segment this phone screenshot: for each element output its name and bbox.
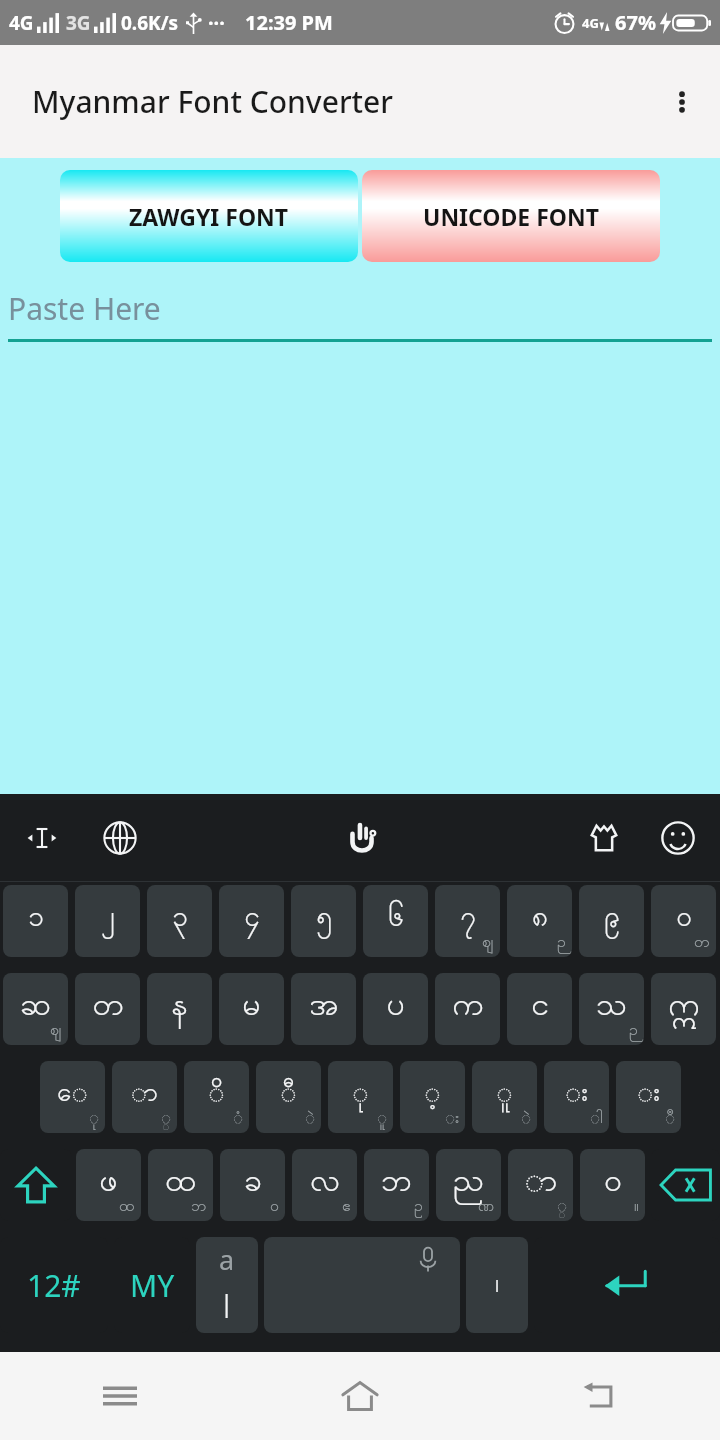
button[interactable]: း [544,1061,609,1133]
staticText: ဆ [20,983,51,1030]
button[interactable]: MY [114,1237,190,1333]
button[interactable]: အ [291,973,356,1045]
staticText: း [445,1107,459,1131]
button[interactable]: Home [240,1352,480,1440]
button[interactable]: More options [654,74,710,130]
staticText: ဝ [604,1159,622,1206]
button[interactable]: Shift [0,1149,72,1221]
button[interactable]: း [616,1061,681,1133]
staticText: 3G [66,10,91,36]
button[interactable]: ၀ [651,885,716,957]
button[interactable]: Space [264,1237,460,1333]
button[interactable]: ူ [472,1061,537,1133]
staticText: ၄ [244,898,260,939]
button[interactable]: ၆ [363,885,428,957]
button[interactable]: UNICODE FONT [362,170,660,262]
button[interactable]: ZAWGYI FONT [60,170,358,262]
button[interactable]: ၄ [219,885,284,957]
staticText: ဣ [668,983,700,1030]
staticText: ူ [377,1107,387,1131]
button[interactable]: Backspace [651,1149,720,1221]
button[interactable]: ပ [363,973,428,1045]
staticText: ါ [590,1107,603,1131]
button[interactable]: Themes [576,810,632,866]
button[interactable]: ဖ [76,1149,141,1221]
staticText: ၁ [28,898,44,939]
button[interactable]: ၃ [147,885,212,957]
button[interactable]: ည [436,1149,501,1221]
button[interactable]: ဣ [651,973,716,1045]
button[interactable]: ိ [184,1061,249,1133]
button[interactable]: ခ [220,1149,285,1221]
staticText: ခ [244,1159,262,1206]
button[interactable]: ၅ [291,885,356,957]
staticText: 12# [27,1265,81,1306]
button[interactable]: ၉ [579,885,644,957]
button[interactable]: 12# [0,1237,108,1333]
button[interactable]: ၂ [75,885,140,957]
button[interactable]: ၈ [507,885,572,957]
staticText: ZAWGYI FONT [129,201,289,232]
staticText: ့ [424,1075,441,1113]
button[interactable]: င [507,973,572,1045]
staticText: ။ [634,1195,639,1219]
button[interactable]: ေ [40,1061,105,1133]
staticText: ဲ [305,1107,315,1131]
staticText: း [565,1075,588,1113]
staticText: ပ [386,983,405,1030]
button[interactable]: ဆ [3,973,68,1045]
staticText: န [171,983,188,1030]
button[interactable]: ဝ [580,1149,645,1221]
button[interactable]: Handwriting [334,810,390,866]
staticText: ေ [57,1075,88,1113]
button[interactable]: ု [328,1061,393,1133]
staticText: ဳ [665,1107,675,1131]
staticText: 67% [615,9,656,36]
button[interactable]: သ [579,973,644,1045]
staticText: ံ [233,1107,243,1131]
staticText: ာ [524,1159,558,1206]
button[interactable]: ထ [148,1149,213,1221]
staticText: UNICODE FONT [423,201,600,232]
staticText: ၃ [172,898,188,939]
button[interactable]: Emoji [650,810,706,866]
button[interactable]: ာ [112,1061,177,1133]
button[interactable]: ၁ [3,885,68,957]
staticText: ဈ [50,1019,62,1043]
staticText: သ [596,983,627,1030]
button[interactable]: Back [480,1352,720,1440]
staticText: ၈ [532,898,548,939]
button[interactable]: တ [75,973,140,1045]
button[interactable]: ီ [256,1061,321,1133]
button[interactable]: Cursor control [14,810,70,866]
button[interactable]: ဘ [364,1149,429,1221]
button[interactable]: ၇ [435,885,500,957]
staticText: ဉ [557,931,566,955]
staticText: ဝ [270,1195,279,1219]
staticText: အ [309,983,339,1030]
button[interactable]: ့ [400,1061,465,1133]
button[interactable]: ၊ [466,1237,528,1333]
button[interactable]: Paste Here [8,288,712,342]
button[interactable]: a [196,1237,258,1333]
staticText: ဲ [521,1107,531,1131]
staticText: ိ [208,1075,225,1113]
button[interactable]: က [435,973,500,1045]
button[interactable]: န [147,973,212,1045]
staticText: ၆ [388,898,404,939]
button[interactable]: မ [219,973,284,1045]
staticText: ူ [496,1075,513,1113]
staticText: ထ [119,1195,135,1219]
staticText: 4G [582,14,599,32]
button[interactable]: လ [292,1149,357,1221]
staticText: | [220,1286,234,1319]
button[interactable]: Change language [92,810,148,866]
button[interactable]: Recents [0,1352,240,1440]
staticText: ဈ [482,931,494,955]
staticText: Paste Here [8,288,161,329]
button[interactable]: ာ [508,1149,573,1221]
staticText: 4G [9,10,34,36]
staticText: မ [242,983,261,1030]
staticText: ဘ [191,1195,207,1219]
button[interactable]: Enter [534,1237,720,1333]
